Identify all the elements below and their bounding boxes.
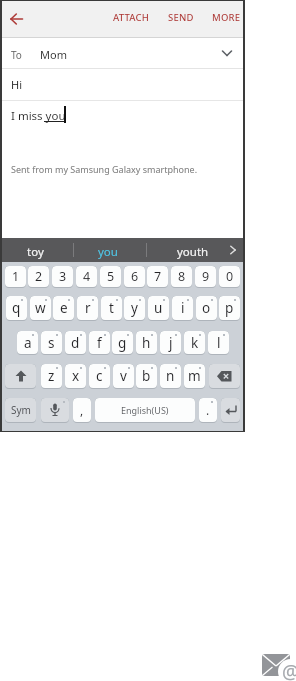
button[interactable]: @ [255,645,296,681]
button[interactable]: 9 [195,266,216,288]
button[interactable]: w [30,296,51,321]
staticText: Hi [11,77,22,92]
button[interactable]: 1 [5,266,26,288]
button[interactable]: p [219,296,240,321]
button[interactable]: u [148,296,169,321]
staticText: 3 [59,268,67,285]
button[interactable]: s [41,331,62,355]
button[interactable]: b [136,364,157,389]
button[interactable] [10,13,24,25]
staticText: c [96,367,103,385]
button[interactable]: m [184,364,205,389]
button[interactable] [221,398,240,423]
staticText: r [85,299,91,317]
button[interactable]: 3 [52,266,73,288]
button[interactable]: g [112,331,133,355]
button[interactable]: c [89,364,110,389]
button[interactable] [5,364,36,389]
button[interactable]: Sym [5,398,36,423]
button[interactable]: . [199,398,217,423]
staticText: 6 [131,268,139,285]
button[interactable] [2,1,243,37]
button[interactable]: y [124,296,145,321]
button[interactable]: j [160,331,181,355]
staticText: k [191,334,199,352]
staticText: j [169,334,173,352]
staticText: SEND [168,11,194,24]
button[interactable]: , [73,398,91,423]
button[interactable]: 5 [100,266,121,288]
button[interactable]: 7 [147,266,168,288]
button[interactable] [2,38,243,68]
button[interactable]: i [172,296,193,321]
staticText: 1 [12,268,20,285]
button[interactable]: 4 [76,266,97,288]
staticText: d [71,334,80,352]
button[interactable]: n [160,364,181,389]
button[interactable]: r [77,296,98,321]
staticText: 4 [83,268,91,285]
staticText: l [217,334,221,352]
button[interactable]: 0 [219,266,240,288]
staticText: 7 [154,268,162,285]
staticText: I miss you [11,108,66,124]
button[interactable] [41,398,69,423]
button[interactable]: o [196,296,217,321]
button[interactable]: l [208,331,229,355]
button[interactable]: e [53,296,74,321]
staticText: 9 [202,268,210,285]
button[interactable]: x [65,364,86,389]
staticText: a [24,334,32,352]
staticText: u [154,299,163,317]
button[interactable]: k [184,331,205,355]
button[interactable]: 8 [171,266,192,288]
staticText: y [131,299,138,317]
button[interactable]: 6 [124,266,145,288]
staticText: Mom [40,47,67,62]
button[interactable]: d [65,331,86,355]
staticText: MORE [212,11,241,24]
staticText: @ [282,659,296,681]
staticText: t [109,299,114,317]
button[interactable]: f [89,331,110,355]
button[interactable]: v [113,364,134,389]
staticText: w [35,299,46,317]
staticText: m [188,367,201,385]
staticText: 0 [226,268,234,285]
staticText: Sym [11,403,31,417]
button[interactable]: q [6,296,27,321]
staticText: o [202,299,211,317]
button[interactable] [209,364,240,389]
button[interactable]: h [136,331,157,355]
staticText: English(US) [121,404,169,416]
button[interactable]: 2 [28,266,49,288]
staticText: f [97,334,102,352]
staticText: toy [27,244,44,260]
staticText: youth [177,244,209,260]
button[interactable]: t [101,296,122,321]
button[interactable]: a [17,331,38,355]
staticText: h [142,334,151,352]
staticText: Sent from my Samsung Galaxy smartphone. [11,163,198,175]
staticText: n [166,367,175,385]
staticText: To [11,48,22,62]
staticText: 5 [107,268,115,285]
staticText: z [48,367,55,385]
button[interactable]: z [41,364,62,389]
staticText: q [12,299,21,317]
staticText: . [206,402,210,418]
staticText: , [80,402,84,418]
staticText: i [181,299,185,317]
staticText: e [60,299,68,317]
staticText: p [225,299,234,317]
staticText: 2 [35,268,43,285]
staticText: x [72,367,80,385]
staticText: v [120,367,127,385]
staticText: b [142,367,151,385]
button[interactable]: English(US) [95,398,195,423]
staticText: 8 [178,268,186,285]
staticText: g [118,334,127,352]
staticText: ATTACH [113,11,150,24]
staticText: you [98,244,118,260]
staticText: s [48,334,55,352]
